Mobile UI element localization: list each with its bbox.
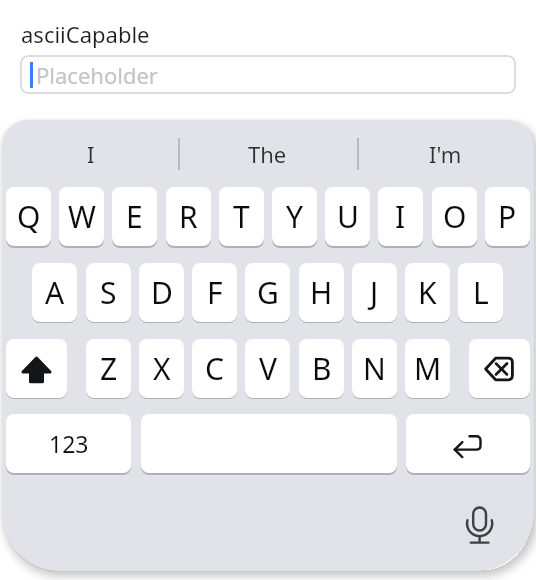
staticText: Q (17, 196, 41, 237)
button[interactable]: U (325, 187, 370, 246)
button[interactable]: 123 (6, 414, 131, 473)
staticText: G (257, 272, 279, 313)
button[interactable]: O (432, 187, 477, 246)
button[interactable]: The (179, 123, 356, 185)
button[interactable]: B (299, 339, 344, 398)
staticText: M (414, 348, 442, 389)
button[interactable]: I (2, 123, 179, 185)
staticText: Placeholder (36, 60, 158, 90)
staticText: D (151, 272, 173, 313)
staticText: T (233, 196, 250, 237)
staticText: F (207, 272, 223, 313)
staticText: I'm (429, 139, 462, 169)
staticText: I (395, 196, 406, 237)
staticText: asciiCapable (21, 19, 150, 49)
button[interactable]: H (299, 263, 344, 322)
staticText: V (259, 348, 277, 389)
button[interactable]: Z (86, 339, 131, 398)
button[interactable]: F (192, 263, 237, 322)
staticText: E (126, 196, 143, 237)
staticText: O (443, 196, 467, 237)
staticText: K (418, 272, 437, 313)
staticText: 123 (49, 428, 89, 459)
button[interactable]: R (166, 187, 211, 246)
button[interactable] (455, 500, 505, 550)
button[interactable]: M (405, 339, 450, 398)
button[interactable]: G (245, 263, 290, 322)
staticText: B (312, 348, 332, 389)
button[interactable]: V (245, 339, 290, 398)
button[interactable] (406, 414, 530, 473)
staticText: X (153, 348, 171, 389)
staticText: I (87, 139, 95, 169)
staticText: L (473, 272, 489, 313)
staticText: S (100, 272, 117, 313)
staticText: N (363, 348, 386, 389)
button[interactable]: P (485, 187, 530, 246)
staticText: U (337, 196, 359, 237)
button[interactable] (469, 339, 530, 398)
button[interactable]: Y (272, 187, 317, 246)
button[interactable]: D (139, 263, 184, 322)
button[interactable]: S (86, 263, 131, 322)
button[interactable]: N (352, 339, 397, 398)
button[interactable]: J (352, 263, 397, 322)
staticText: C (205, 348, 224, 389)
button[interactable]: L (458, 263, 503, 322)
button[interactable] (6, 339, 67, 398)
staticText: R (179, 196, 198, 237)
staticText: P (498, 196, 517, 237)
button[interactable]: W (59, 187, 104, 246)
button[interactable]: Placeholder (20, 55, 516, 94)
staticText: Z (100, 348, 118, 389)
button[interactable]: I (378, 187, 423, 246)
button[interactable]: E (112, 187, 157, 246)
button[interactable]: I'm (357, 123, 534, 185)
staticText: J (370, 272, 379, 313)
staticText: Y (286, 196, 303, 237)
button[interactable]: C (192, 339, 237, 398)
button[interactable]: X (139, 339, 184, 398)
button[interactable]: Q (6, 187, 51, 246)
button[interactable]: A (32, 263, 77, 322)
staticText: The (248, 139, 287, 169)
staticText: A (45, 272, 65, 313)
button[interactable]: T (219, 187, 264, 246)
staticText: W (68, 196, 96, 237)
button[interactable]: K (405, 263, 450, 322)
staticText: H (310, 272, 333, 313)
